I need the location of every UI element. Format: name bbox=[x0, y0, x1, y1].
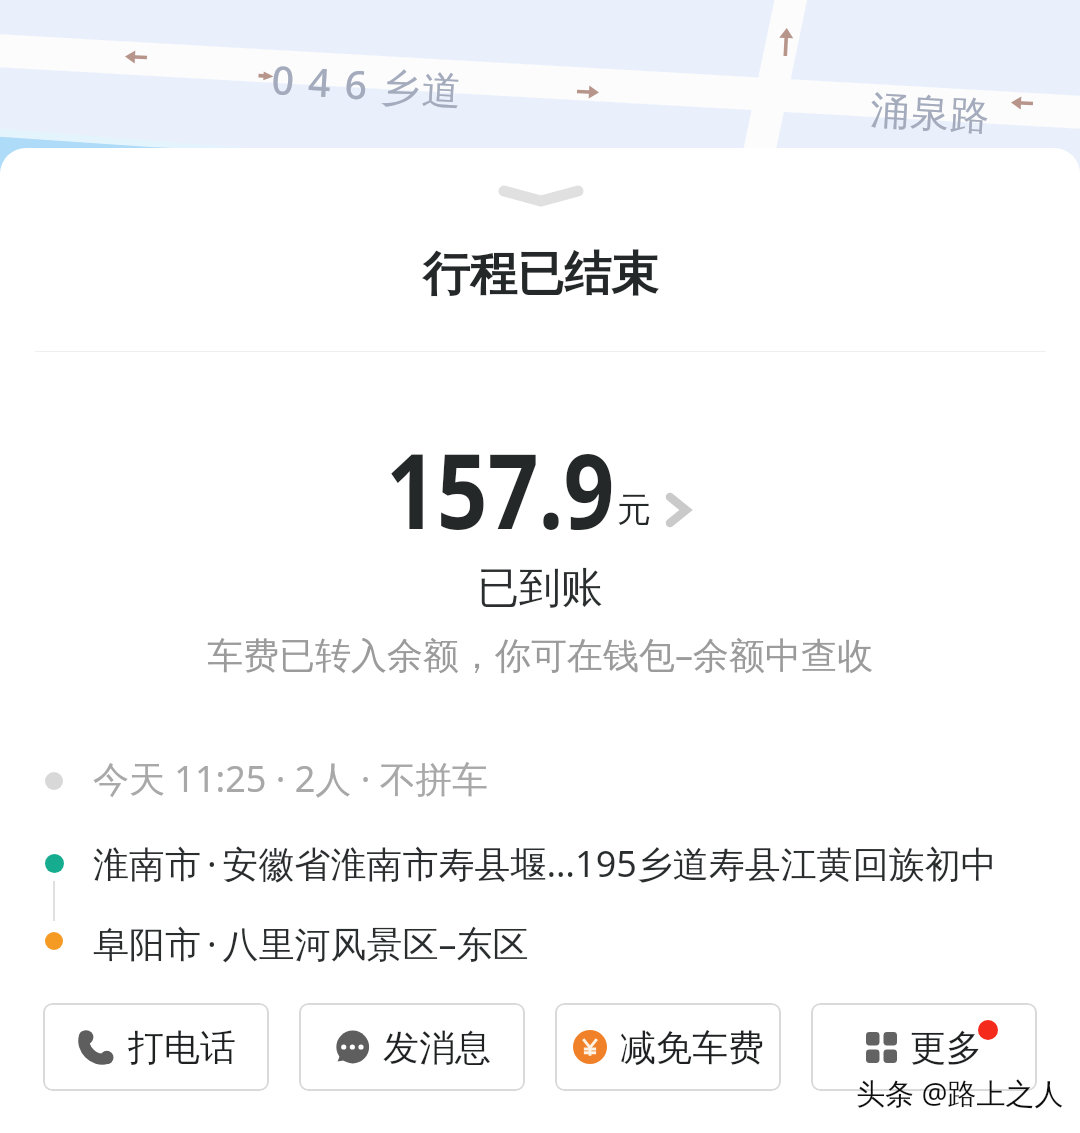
button[interactable]: 减免车费 bbox=[555, 1003, 781, 1091]
button[interactable]: 今天 11:25 · 2人 · 不拼车 bbox=[93, 754, 488, 803]
button[interactable]: 发消息 bbox=[299, 1003, 525, 1091]
staticText: 元 bbox=[617, 488, 651, 531]
staticText: 阜阳市 · 八里河风景区–东区 bbox=[93, 919, 529, 968]
staticText: 更多 bbox=[910, 1025, 982, 1070]
button[interactable]: 打电话 bbox=[43, 1003, 269, 1091]
staticText: 发消息 bbox=[383, 1025, 491, 1070]
button[interactable]: Fare details bbox=[386, 440, 696, 542]
button[interactable]: 阜阳市 · 八里河风景区–东区 bbox=[93, 919, 529, 968]
staticText: 头条 @路上之人 bbox=[856, 1073, 1064, 1113]
staticText: 打电话 bbox=[128, 1025, 236, 1070]
staticText: 减免车费 bbox=[620, 1025, 764, 1070]
staticText: 行程已结束 bbox=[423, 245, 658, 304]
staticText: 今天 11:25 · 2人 · 不拼车 bbox=[93, 754, 488, 803]
staticText: 157.9 bbox=[386, 418, 615, 560]
button[interactable]: 淮南市 · 安徽省淮南市寿县堰…195乡道寿县江黄回族初中 bbox=[93, 839, 997, 888]
staticText: 已到账 bbox=[477, 562, 603, 615]
staticText: 淮南市 · 安徽省淮南市寿县堰…195乡道寿县江黄回族初中 bbox=[93, 839, 997, 888]
button[interactable]: 更多 bbox=[811, 1003, 1037, 1091]
staticText: 0 4 6 乡道 bbox=[270, 52, 465, 116]
staticText: 涌泉路 bbox=[869, 85, 991, 141]
button[interactable]: Collapse panel bbox=[494, 182, 588, 210]
staticText: 车费已转入余额，你可在钱包–余额中查收 bbox=[207, 630, 873, 679]
